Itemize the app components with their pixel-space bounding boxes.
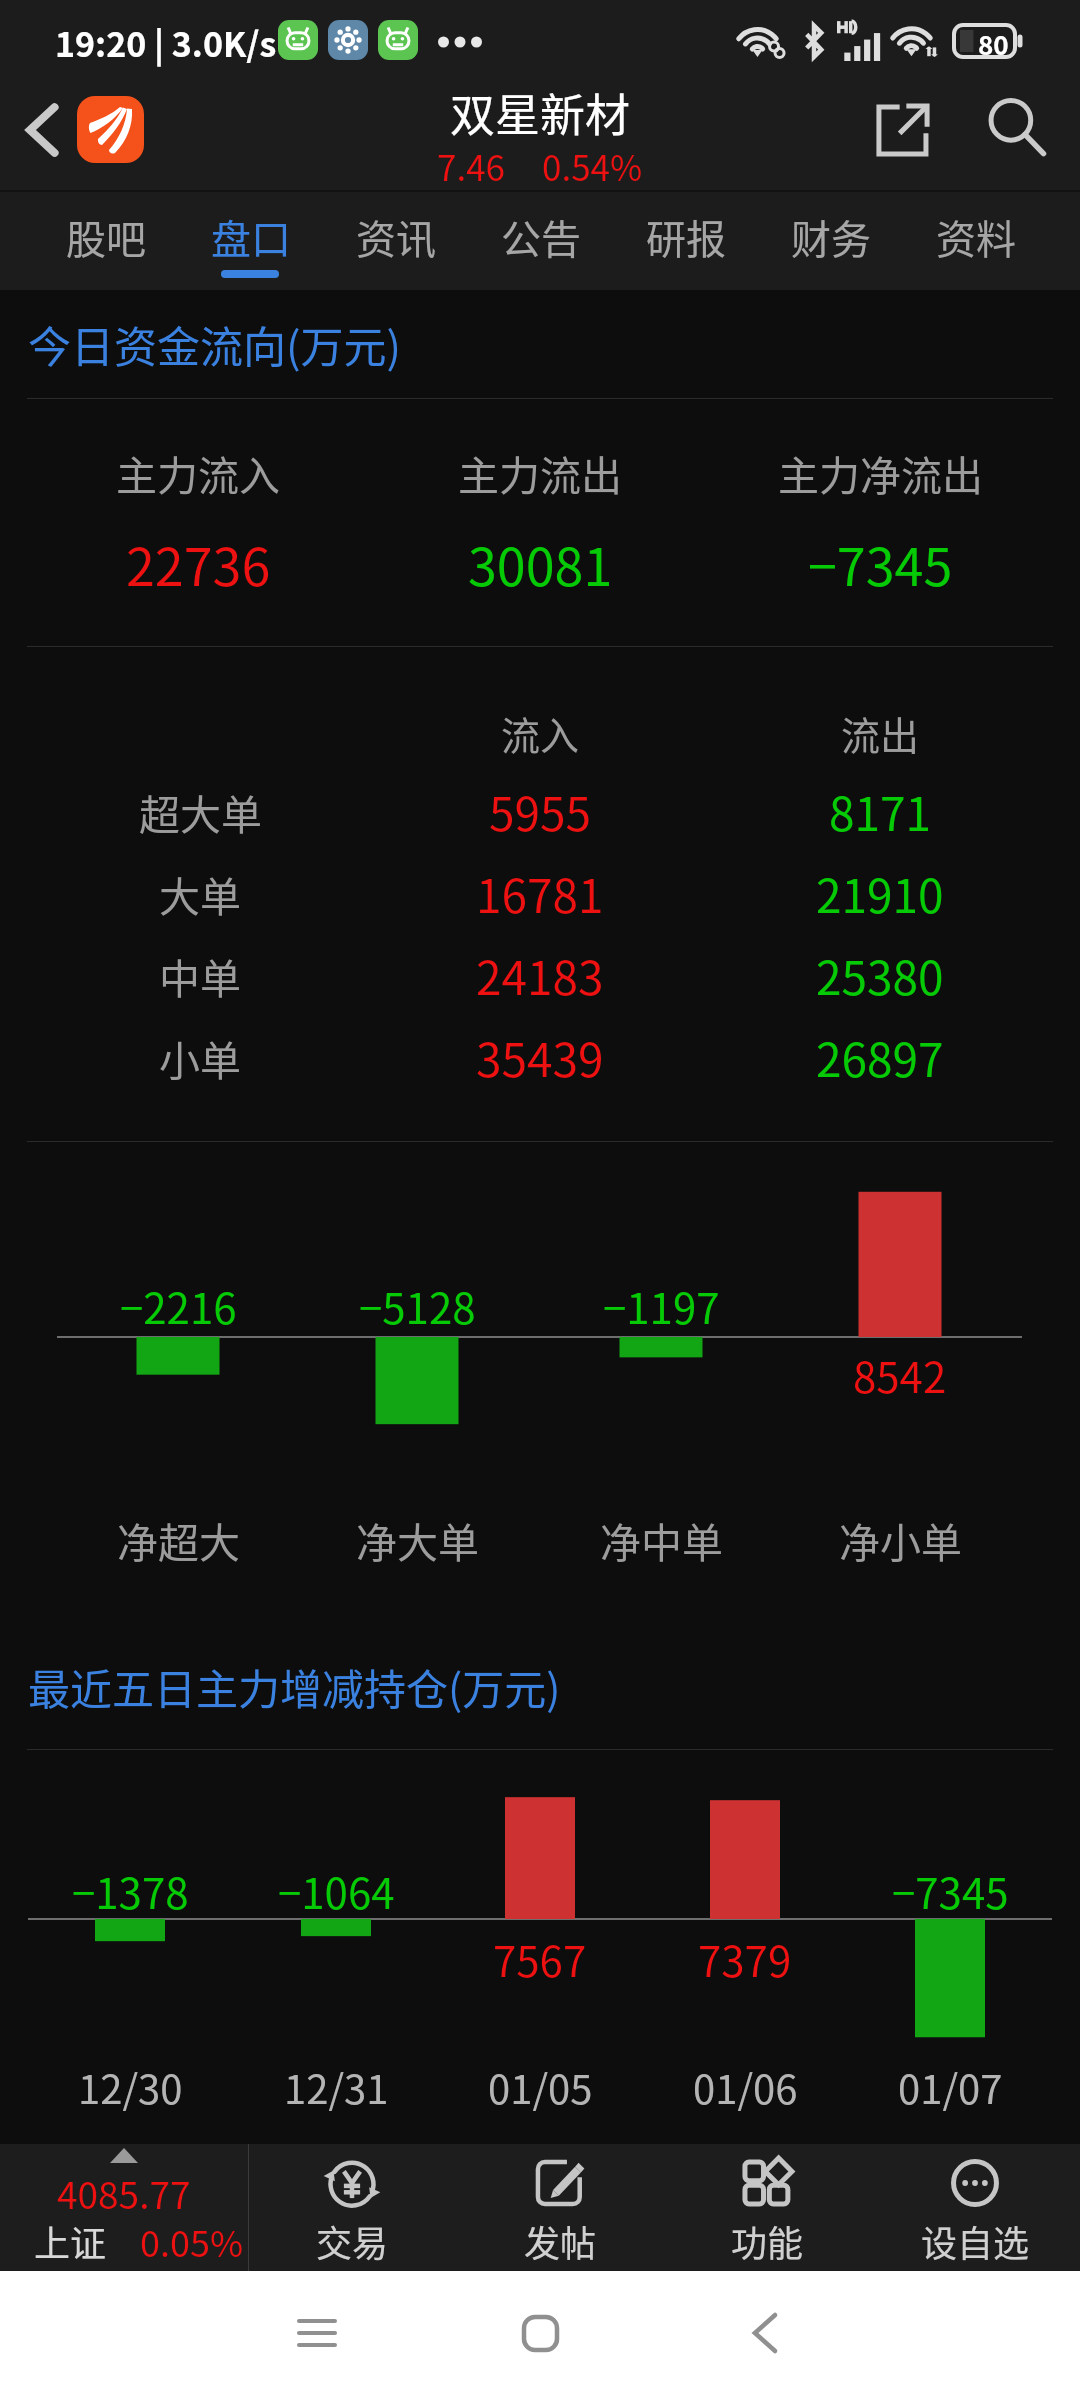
- button[interactable]: [460, 2144, 660, 2271]
- staticText: 35439: [476, 1024, 604, 1091]
- button[interactable]: [252, 2144, 452, 2271]
- staticText: 16781: [476, 860, 604, 927]
- staticText: 发帖: [524, 2215, 597, 2267]
- staticText: 8542: [853, 1344, 947, 1405]
- staticText: 7.46: [437, 140, 506, 191]
- staticText: 大单: [159, 864, 241, 923]
- staticText: 股吧: [66, 208, 146, 266]
- staticText: 5955: [489, 778, 592, 845]
- button[interactable]: Search: [972, 84, 1060, 172]
- button[interactable]: 研报: [613, 190, 758, 290]
- staticText: −2216: [120, 1275, 237, 1336]
- button[interactable]: 盘口: [178, 190, 323, 290]
- staticText: 流入: [501, 705, 580, 761]
- staticText: 22736: [126, 526, 271, 601]
- staticText: 中单: [159, 946, 241, 1005]
- staticText: 12/31: [284, 2058, 389, 2116]
- button[interactable]: Back: [7, 95, 77, 165]
- staticText: 资讯: [356, 208, 436, 266]
- staticText: 设自选: [921, 2215, 1030, 2267]
- button[interactable]: 资料: [903, 190, 1048, 290]
- staticText: −1064: [278, 1860, 395, 1921]
- button[interactable]: [0, 2144, 248, 2271]
- staticText: 盘口: [211, 208, 291, 266]
- staticText: 0.54%: [542, 140, 643, 191]
- staticText: −1378: [72, 1860, 189, 1921]
- staticText: 4085.77: [57, 2166, 191, 2220]
- staticText: 30081: [468, 526, 613, 601]
- staticText: 流出: [841, 705, 920, 761]
- staticText: −7345: [892, 1860, 1009, 1921]
- button[interactable]: Home: [480, 2273, 600, 2393]
- staticText: −5128: [359, 1275, 476, 1336]
- staticText: 研报: [646, 208, 726, 266]
- button[interactable]: Eastmoney logo: [77, 96, 144, 163]
- staticText: 功能: [731, 2215, 804, 2267]
- staticText: 7379: [698, 1928, 792, 1989]
- button[interactable]: 财务: [758, 190, 903, 290]
- staticText: 19:20 | 3.0K/s: [55, 18, 277, 67]
- button[interactable]: 资讯: [323, 190, 468, 290]
- button[interactable]: Back: [705, 2273, 825, 2393]
- staticText: 上证: [34, 2215, 107, 2267]
- staticText: 净小单: [839, 1510, 962, 1569]
- staticText: 12/30: [78, 2058, 183, 2116]
- staticText: 最近五日主力增减持仓(万元): [28, 1656, 561, 1717]
- staticText: 8171: [829, 778, 932, 845]
- staticText: −7345: [808, 526, 953, 601]
- staticText: 7567: [493, 1928, 587, 1989]
- staticText: 今日资金流向(万元): [28, 313, 402, 375]
- staticText: 交易: [316, 2215, 389, 2267]
- staticText: 80: [978, 25, 1009, 55]
- staticText: 主力流出: [458, 443, 622, 502]
- staticText: 0.05%: [140, 2215, 244, 2267]
- staticText: 21910: [816, 860, 944, 927]
- button[interactable]: 公告: [468, 190, 613, 290]
- staticText: 01/05: [488, 2058, 593, 2116]
- staticText: 25380: [816, 942, 944, 1009]
- button[interactable]: 股吧: [33, 190, 178, 290]
- staticText: 小单: [159, 1028, 241, 1087]
- staticText: 01/07: [898, 2058, 1003, 2116]
- staticText: 净中单: [600, 1510, 723, 1569]
- staticText: 24183: [476, 942, 604, 1009]
- staticText: 净大单: [356, 1510, 479, 1569]
- staticText: 财务: [791, 208, 871, 266]
- button[interactable]: [875, 2144, 1075, 2271]
- staticText: 资料: [936, 208, 1016, 266]
- staticText: 01/06: [693, 2058, 798, 2116]
- staticText: 双星新材: [450, 80, 631, 145]
- staticText: 主力流入: [116, 443, 280, 502]
- staticText: −1197: [603, 1275, 720, 1336]
- staticText: 超大单: [139, 782, 262, 841]
- button[interactable]: [667, 2144, 867, 2271]
- staticText: 26897: [816, 1024, 944, 1091]
- button[interactable]: Share: [859, 86, 947, 174]
- staticText: 主力净流出: [778, 443, 983, 502]
- button[interactable]: Recent apps: [257, 2273, 377, 2393]
- staticText: 净超大: [117, 1510, 240, 1569]
- staticText: 公告: [501, 208, 581, 266]
